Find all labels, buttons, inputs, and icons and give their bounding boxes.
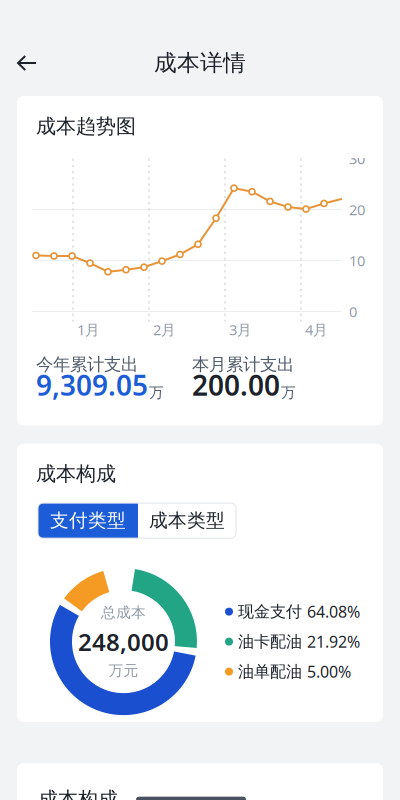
- staticText: 64.08%: [307, 601, 360, 622]
- staticText: 万元: [108, 662, 138, 680]
- staticText: 10: [349, 251, 365, 270]
- staticText: 成本构成: [36, 462, 116, 486]
- staticText: 支付类型: [50, 509, 126, 532]
- staticText: 总成本: [101, 604, 146, 622]
- staticText: 248,000: [78, 626, 169, 658]
- staticText: 油卡配油: [238, 632, 302, 651]
- staticText: 5.00%: [307, 661, 351, 682]
- staticText: 成本构成: [38, 787, 118, 800]
- staticText: 成本趋势图: [36, 114, 136, 139]
- button[interactable]: 成本类型: [138, 503, 236, 538]
- staticText: 20: [349, 200, 365, 219]
- staticText: 3月: [229, 320, 252, 339]
- staticText: 0: [349, 302, 357, 321]
- button[interactable]: 支付类型: [38, 503, 138, 538]
- staticText: 1月: [77, 320, 100, 339]
- staticText: 4月: [305, 320, 328, 339]
- staticText: 万: [149, 383, 164, 401]
- staticText: 30: [349, 149, 365, 168]
- staticText: 油单配油: [238, 662, 302, 681]
- staticText: 200.00: [192, 366, 280, 404]
- staticText: 成本类型: [149, 509, 225, 532]
- staticText: 成本详情: [154, 49, 246, 77]
- staticText: 现金支付: [238, 602, 302, 621]
- button[interactable]: 返回: [3, 41, 51, 85]
- staticText: 本月累计支出: [192, 354, 294, 375]
- staticText: 今年累计支出: [36, 354, 138, 375]
- staticText: 2月: [153, 320, 176, 339]
- staticText: 万: [281, 383, 296, 401]
- staticText: 21.92%: [307, 631, 360, 652]
- staticText: 9,309.05: [36, 366, 148, 404]
